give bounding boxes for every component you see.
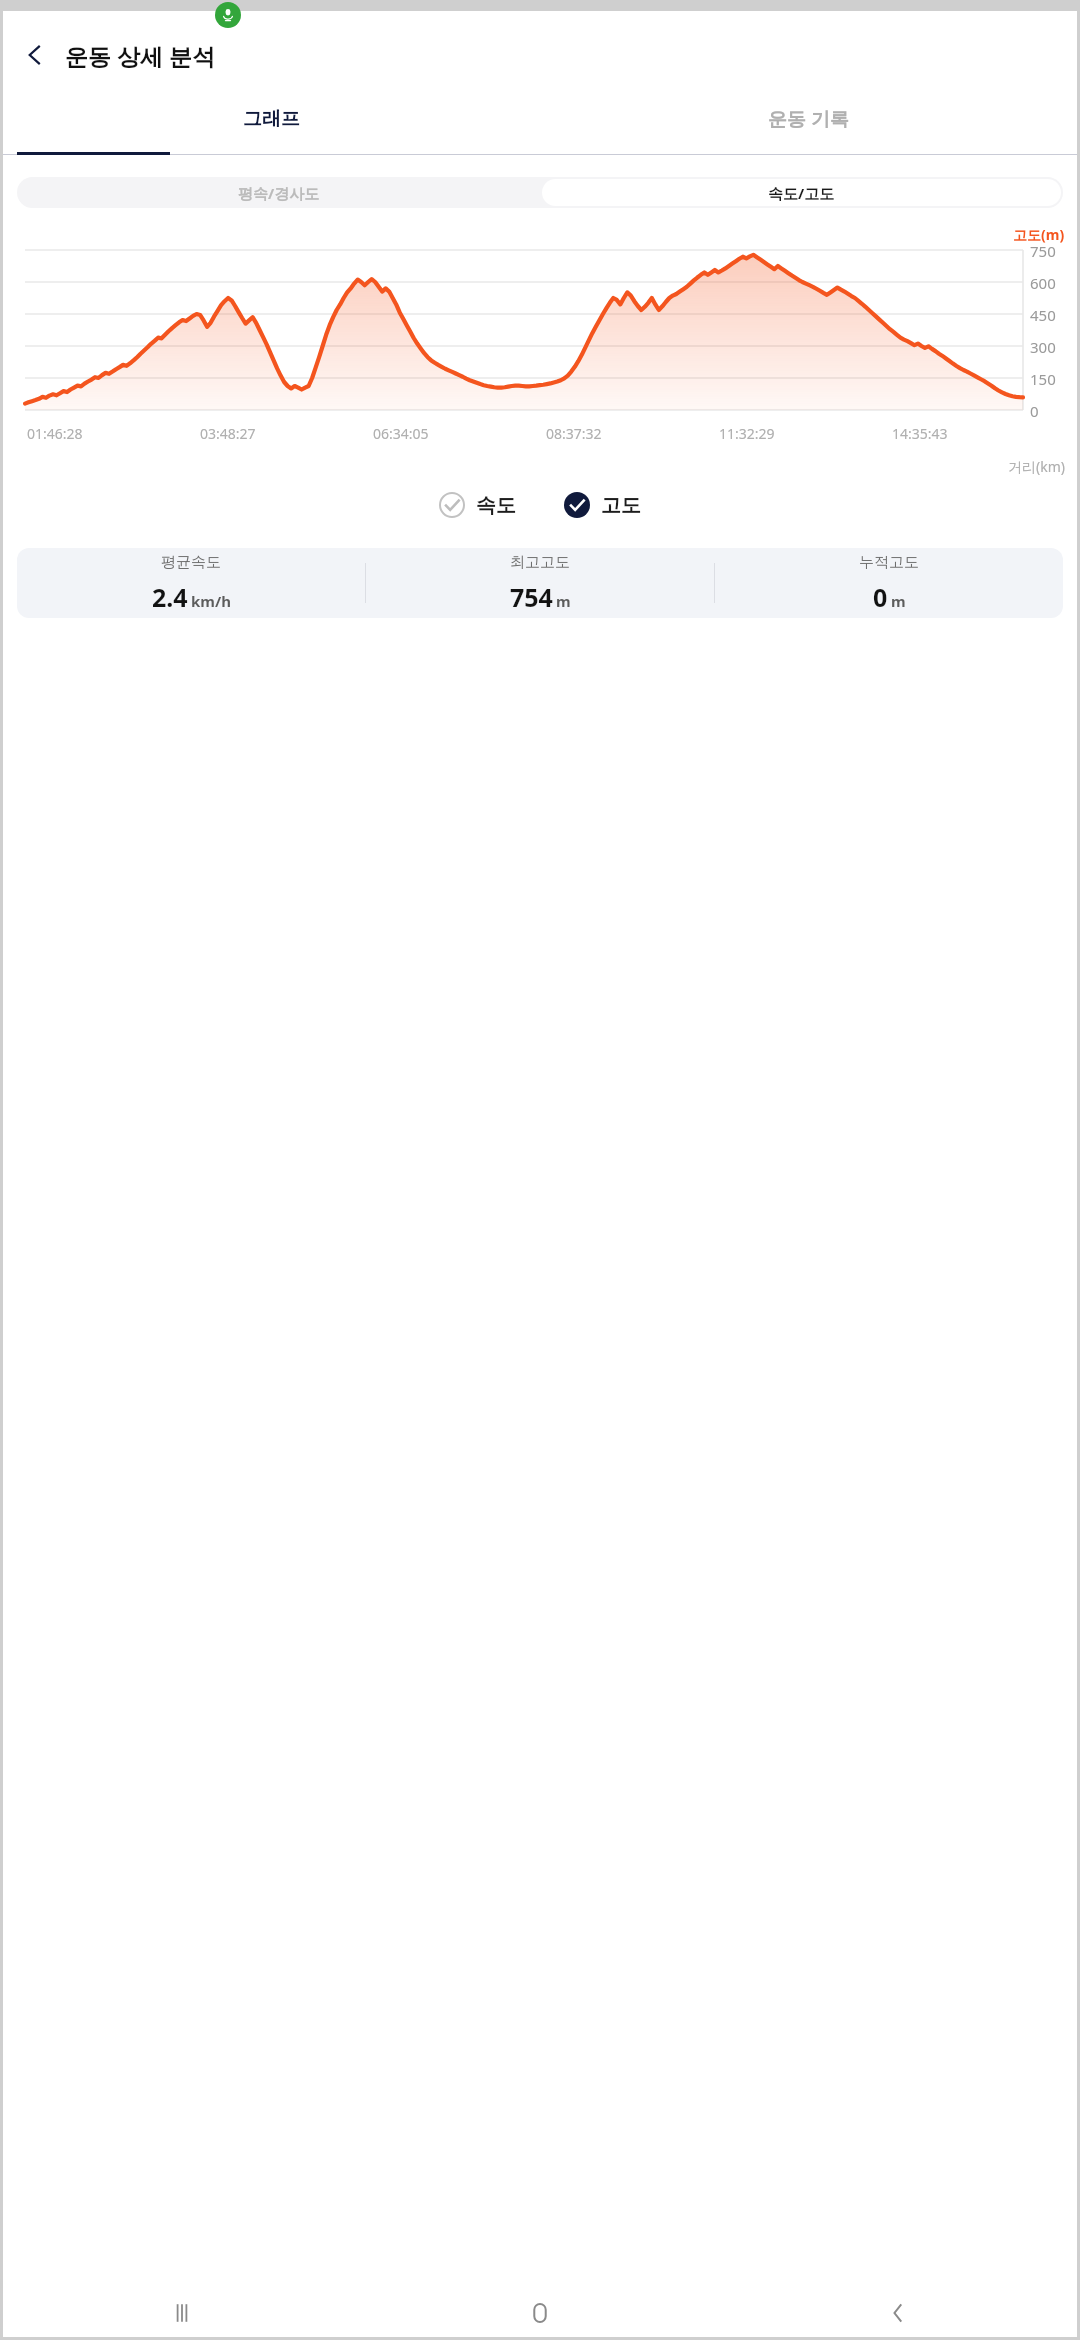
- staticText: 450: [1030, 305, 1056, 325]
- staticText: 속도: [476, 493, 516, 518]
- button[interactable]: Back: [719, 2289, 1077, 2337]
- staticText: 2.4: [152, 580, 188, 614]
- staticText: 14:35:43: [892, 424, 948, 443]
- staticText: 평균속도: [161, 553, 221, 572]
- button[interactable]: 평균속도: [17, 548, 1063, 618]
- staticText: 거리(km): [1008, 457, 1065, 476]
- button[interactable]: Home: [361, 2289, 719, 2337]
- staticText: 운동 기록: [768, 106, 849, 132]
- staticText: 03:48:27: [200, 424, 256, 443]
- staticText: 고도: [601, 493, 641, 518]
- staticText: 06:34:05: [373, 424, 429, 443]
- staticText: 0: [873, 580, 888, 614]
- button[interactable]: Voice input: [215, 2, 241, 28]
- staticText: 고도(m): [1013, 225, 1065, 244]
- staticText: 300: [1030, 337, 1056, 357]
- button[interactable]: 고도: [564, 492, 641, 518]
- staticText: 그래프: [243, 107, 300, 131]
- button[interactable]: 속도: [439, 492, 516, 518]
- button[interactable]: Back: [11, 31, 59, 79]
- button[interactable]: 속도/고도: [542, 179, 1061, 206]
- staticText: 600: [1030, 273, 1056, 293]
- staticText: 평속/경사도: [238, 183, 320, 203]
- button[interactable]: Recent apps: [3, 2289, 361, 2337]
- staticText: 누적고도: [859, 553, 919, 572]
- staticText: 750: [1030, 241, 1056, 261]
- button[interactable]: 그래프: [3, 83, 540, 155]
- staticText: m: [556, 591, 571, 611]
- staticText: 150: [1030, 369, 1056, 389]
- staticText: 01:46:28: [27, 424, 83, 443]
- staticText: 08:37:32: [546, 424, 602, 443]
- staticText: 최고고도: [510, 553, 570, 572]
- staticText: 11:32:29: [719, 424, 775, 443]
- staticText: 속도/고도: [768, 183, 835, 203]
- staticText: km/h: [191, 591, 231, 611]
- staticText: m: [891, 591, 906, 611]
- staticText: 운동 상세 분석: [65, 40, 215, 71]
- staticText: 754: [510, 580, 553, 614]
- button[interactable]: 운동 기록: [540, 83, 1077, 155]
- staticText: 0: [1030, 401, 1039, 421]
- button[interactable]: 평속/경사도: [17, 177, 540, 208]
